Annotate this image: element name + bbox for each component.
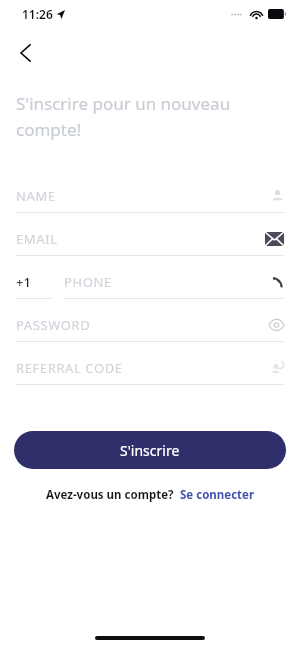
staticText: EMAIL [16,230,265,248]
staticText: REFERRAL CODE [16,359,271,377]
staticText: PHONE [64,273,272,291]
staticText: S'inscrire pour un nouveau compte! [16,92,284,141]
button[interactable]: PASSWORD [16,308,284,351]
staticText: PASSWORD [16,316,269,334]
staticText: S'inscrire [120,441,180,460]
staticText: 11:26 [22,6,53,22]
other: Email [265,232,284,246]
staticText: Se connecter [180,487,255,503]
button[interactable]: EMAIL [16,222,284,265]
button[interactable]: +1 [16,265,52,299]
other: Phone [272,276,284,288]
staticText: NAME [16,187,271,205]
button[interactable]: REFERRAL CODE [16,351,284,394]
button[interactable]: Back [8,36,42,70]
other: Show password [269,320,284,330]
button[interactable]: S'inscrire [14,431,286,469]
button[interactable]: Se connecter [180,487,255,503]
button[interactable]: NAME [16,179,284,222]
other: Referral code [271,361,284,374]
other: Name [271,189,284,202]
staticText: Avez-vous un compte? [46,487,174,503]
staticText: +1 [16,273,31,291]
button[interactable]: PHONE [64,265,284,299]
